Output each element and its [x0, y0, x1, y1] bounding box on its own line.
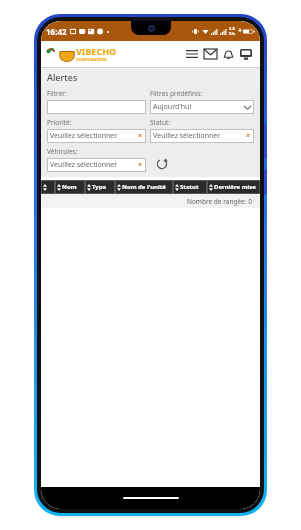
- staticText: Type: [92, 183, 107, 191]
- button[interactable]: Type: [85, 180, 115, 194]
- button[interactable]: Dernière mise: [207, 180, 260, 194]
- staticText: ×: [138, 131, 143, 141]
- staticText: Filtrer:: [47, 89, 67, 98]
- staticText: Statut:: [150, 118, 171, 127]
- button[interactable]: Notifications: [219, 45, 237, 63]
- button[interactable]: [47, 100, 146, 114]
- button[interactable]: Display: [237, 45, 255, 63]
- staticText: Veuillez sélectionner: [153, 131, 221, 141]
- staticText: Nom: [62, 183, 77, 191]
- staticText: CORPORATION: [76, 57, 107, 63]
- staticText: Aujourd'hui: [153, 102, 192, 112]
- button[interactable]: Rafraîchir: [150, 156, 254, 172]
- button[interactable]: Nom de l'unité: [115, 180, 173, 194]
- staticText: Priorité:: [47, 118, 72, 127]
- staticText: Nombre de rangée: 0: [187, 197, 252, 206]
- staticText: 3.8 K/s: [229, 26, 236, 36]
- staticText: Dernière mise: [214, 183, 256, 191]
- staticText: 16:42: [46, 26, 67, 37]
- button[interactable]: [41, 180, 55, 194]
- button[interactable]: Menu: [183, 45, 201, 63]
- staticText: Filtres prédéfinis:: [150, 89, 203, 98]
- staticText: +: [238, 26, 243, 36]
- button[interactable]: Veuillez sélectionner: [47, 158, 146, 172]
- button[interactable]: Veuillez sélectionner: [47, 129, 146, 143]
- staticText: Veuillez sélectionner: [50, 160, 118, 170]
- staticText: Alertes: [47, 71, 78, 83]
- button[interactable]: Statut: [173, 180, 207, 194]
- button[interactable]: Veuillez sélectionner: [150, 129, 254, 143]
- staticText: Statut: [180, 183, 199, 191]
- button[interactable]: Nom: [55, 180, 85, 194]
- staticText: ×: [246, 131, 251, 141]
- staticText: Véhicules:: [47, 147, 78, 156]
- staticText: Nom de l'unité: [122, 183, 166, 191]
- button[interactable]: Aujourd'hui: [150, 100, 254, 114]
- button[interactable]: Messages: [201, 45, 219, 63]
- staticText: VIBECHO: [76, 45, 117, 57]
- staticText: Veuillez sélectionner: [50, 131, 118, 141]
- staticText: ×: [138, 160, 143, 170]
